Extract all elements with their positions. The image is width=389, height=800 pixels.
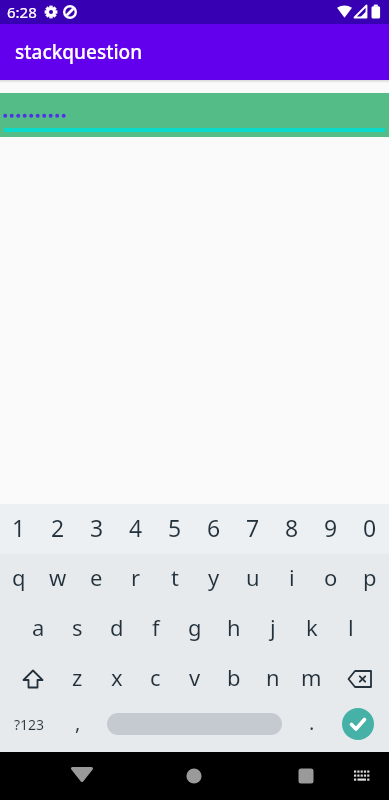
staticText: k	[306, 612, 318, 642]
button[interactable]: h	[214, 604, 253, 654]
staticText: t	[171, 562, 179, 592]
staticText: m	[301, 662, 322, 692]
staticText: c	[150, 662, 161, 692]
button[interactable]: m	[292, 654, 331, 704]
button[interactable]: z	[58, 654, 97, 704]
staticText: q	[12, 562, 26, 592]
staticText: a	[32, 612, 45, 642]
button[interactable]: .	[292, 700, 331, 748]
button[interactable]: 9	[311, 504, 350, 554]
button[interactable]: 7	[233, 504, 272, 554]
button[interactable]	[282, 752, 330, 800]
button[interactable]: y	[194, 554, 233, 604]
staticText: p	[363, 562, 377, 592]
button[interactable]: a	[19, 604, 58, 654]
button[interactable]	[170, 752, 218, 800]
button[interactable]: q	[0, 554, 38, 604]
button[interactable]: 3	[77, 504, 116, 554]
button[interactable]: l	[331, 604, 370, 654]
staticText: b	[227, 662, 241, 692]
button[interactable]	[58, 752, 106, 800]
staticText: j	[270, 612, 276, 642]
button[interactable]: n	[253, 654, 292, 704]
staticText: 3	[90, 512, 104, 543]
staticText: x	[111, 662, 123, 692]
button[interactable]: f	[136, 604, 175, 654]
button[interactable]: k	[292, 604, 331, 654]
button[interactable]: 8	[272, 504, 311, 554]
staticText: y	[208, 562, 220, 592]
button[interactable]: p	[350, 554, 389, 604]
staticText: d	[110, 612, 124, 642]
staticText: stackquestion	[15, 39, 143, 65]
staticText: 4	[129, 512, 143, 543]
button[interactable]	[342, 756, 382, 796]
button[interactable]	[342, 708, 374, 740]
staticText: h	[227, 612, 241, 642]
staticText: o	[324, 562, 338, 592]
button[interactable]: 1	[0, 504, 38, 554]
staticText: s	[72, 612, 83, 642]
staticText: 1	[12, 512, 26, 543]
button[interactable]: 0	[350, 504, 389, 554]
button[interactable]: 4	[116, 504, 155, 554]
button[interactable]: u	[233, 554, 272, 604]
staticText: e	[90, 562, 103, 592]
button[interactable]: 2	[38, 504, 77, 554]
button[interactable]: v	[175, 654, 214, 704]
button[interactable]: b	[214, 654, 253, 704]
staticText: i	[289, 562, 295, 592]
button[interactable]: ?123	[0, 700, 58, 748]
staticText: ?123	[14, 715, 45, 734]
button[interactable]: x	[97, 654, 136, 704]
button[interactable]: e	[77, 554, 116, 604]
staticText: 0	[363, 512, 377, 543]
button[interactable]: 5	[155, 504, 194, 554]
staticText: r	[131, 562, 141, 592]
button[interactable]: w	[38, 554, 77, 604]
staticText: f	[152, 612, 160, 642]
staticText: 2	[51, 512, 65, 543]
staticText: 6	[207, 512, 221, 543]
staticText: 8	[285, 512, 299, 543]
button[interactable]: s	[58, 604, 97, 654]
button[interactable]: c	[136, 654, 175, 704]
staticText: w	[49, 562, 67, 592]
staticText: 9	[324, 512, 338, 543]
button[interactable]: t	[155, 554, 194, 604]
button[interactable]: i	[272, 554, 311, 604]
staticText: .	[309, 709, 315, 736]
button[interactable]: g	[175, 604, 214, 654]
button[interactable]	[0, 654, 58, 704]
button[interactable]: j	[253, 604, 292, 654]
staticText: ,	[75, 709, 81, 736]
staticText: z	[72, 662, 83, 692]
staticText: g	[188, 612, 202, 642]
button[interactable]: r	[116, 554, 155, 604]
button[interactable]	[0, 93, 389, 137]
button[interactable]	[107, 700, 282, 748]
staticText: v	[189, 662, 201, 692]
button[interactable]	[331, 654, 389, 704]
staticText: 5	[168, 512, 182, 543]
staticText: 7	[246, 512, 260, 543]
staticText: u	[246, 562, 260, 592]
button[interactable]: ,	[58, 700, 97, 748]
staticText: l	[348, 612, 354, 642]
button[interactable]: d	[97, 604, 136, 654]
staticText: 6:28	[7, 2, 37, 22]
staticText: n	[266, 662, 280, 692]
button[interactable]: 6	[194, 504, 233, 554]
button[interactable]: o	[311, 554, 350, 604]
